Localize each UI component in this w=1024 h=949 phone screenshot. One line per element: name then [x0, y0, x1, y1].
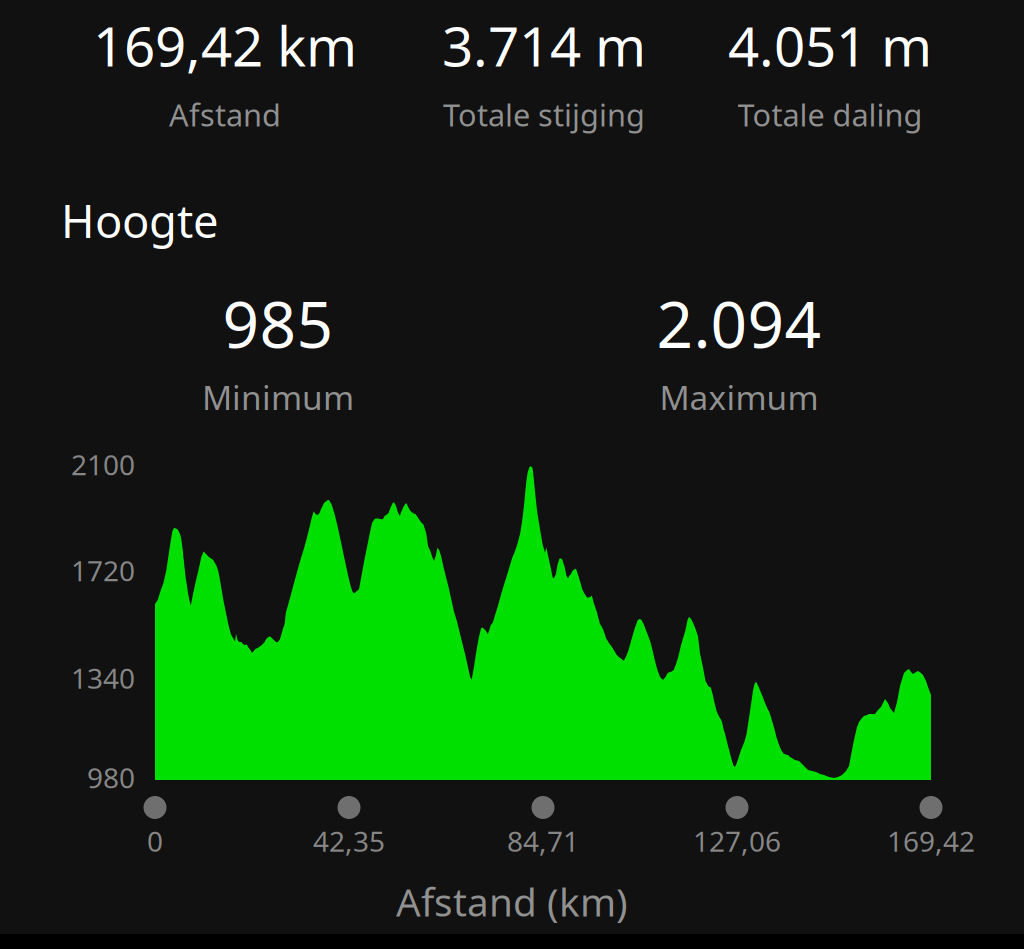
staticText: Maximum	[659, 375, 818, 419]
staticText: Afstand (km)	[396, 876, 628, 927]
staticText: 42,35	[313, 822, 385, 860]
staticText: 0	[147, 822, 163, 860]
staticText: 2.094	[656, 281, 821, 366]
staticText: Totale daling	[737, 94, 922, 135]
staticText: 980	[87, 759, 135, 796]
staticText: Minimum	[202, 375, 354, 419]
staticText: Totale stijging	[443, 94, 645, 135]
staticText: Afstand	[169, 94, 281, 135]
staticText: 1720	[71, 552, 135, 589]
staticText: Hoogte	[61, 190, 219, 250]
staticText: 127,06	[693, 822, 781, 860]
staticText: 169,42 km	[93, 9, 357, 82]
staticText: 169,42	[887, 822, 975, 860]
staticText: 84,71	[507, 822, 579, 860]
staticText: 4.051 m	[728, 9, 932, 82]
staticText: 985	[222, 281, 333, 366]
staticText: 1340	[71, 659, 135, 697]
staticText: 2100	[71, 446, 135, 483]
staticText: 3.714 m	[442, 9, 646, 82]
